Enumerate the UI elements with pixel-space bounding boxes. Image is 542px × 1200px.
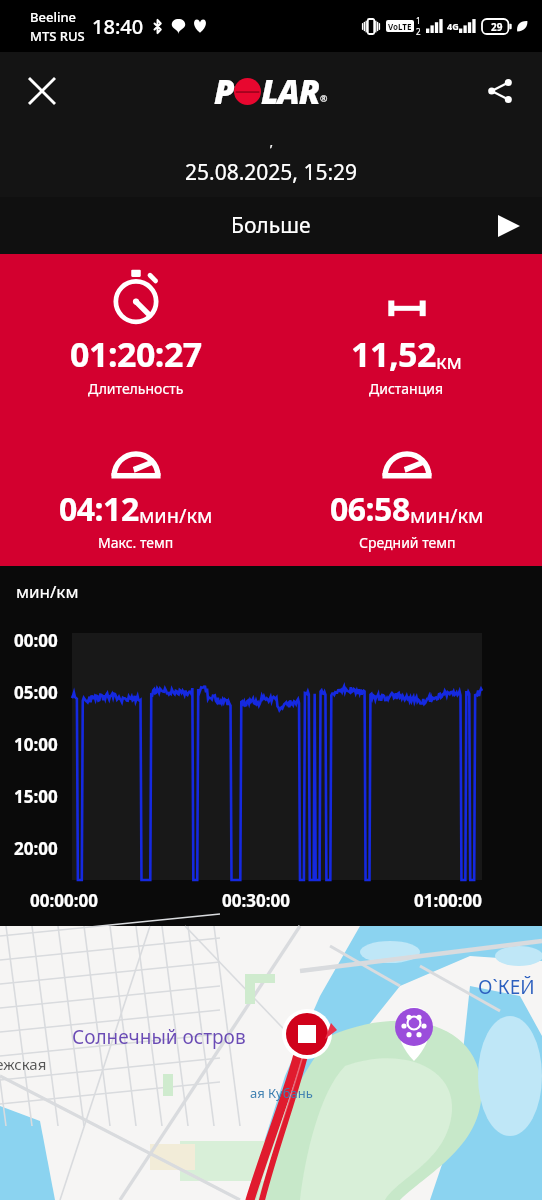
button[interactable]: Close [18,67,66,115]
staticText: ® [320,92,328,104]
staticText: мин/км [139,502,213,529]
staticText: 18:40 [92,13,144,40]
staticText: 00:30:00 [222,889,290,912]
staticText: P [214,69,234,114]
staticText: Макс. темп [98,533,174,552]
button[interactable]: Больше [0,197,542,254]
staticText: 20:00 [14,837,58,860]
button[interactable]: 01:20:27 [70,268,202,398]
button[interactable]: Route map [0,926,542,1200]
staticText: мин/км [16,580,79,603]
staticText: 15:00 [14,785,58,808]
staticText: мин/км [410,502,484,529]
staticText: 10:00 [14,733,58,756]
staticText: Дистанция [369,379,444,398]
staticText: 1 [416,15,421,26]
staticText: О`КЕЙ [478,974,535,1000]
staticText: Больше [231,211,311,240]
staticText: MTS RUS [30,27,85,45]
staticText: 2 [416,26,421,37]
staticText: LAR [261,69,320,114]
staticText: 01:00:00 [414,889,482,912]
staticText: км [436,348,462,375]
staticText: Солнечный остров [72,1024,246,1050]
button[interactable]: 06:58 [330,428,484,552]
staticText: 29 [491,20,503,34]
staticText: VoLTE [388,21,412,32]
staticText: Средний темп [359,533,456,552]
button[interactable]: ’ [0,130,542,197]
staticText: 04:12 [59,487,139,531]
staticText: Beeline [30,8,77,26]
staticText: нежская [0,1054,47,1074]
staticText: 25.08.2025, 15:29 [185,158,358,187]
staticText: 4G [447,20,459,32]
staticText: 05:00 [14,681,58,704]
staticText: 00:00 [14,629,58,652]
staticText: 06:58 [330,487,410,531]
staticText: ая Кубань [250,1084,313,1102]
staticText: 01:20:27 [70,331,202,377]
button[interactable]: 11,52 [351,268,462,398]
staticText: 00:00:00 [30,889,98,912]
button[interactable]: Share [476,67,524,115]
staticText: ’ [270,140,273,158]
staticText: 11,52 [351,331,436,377]
button[interactable]: 04:12 [59,428,213,552]
staticText: Длительность [88,379,184,398]
